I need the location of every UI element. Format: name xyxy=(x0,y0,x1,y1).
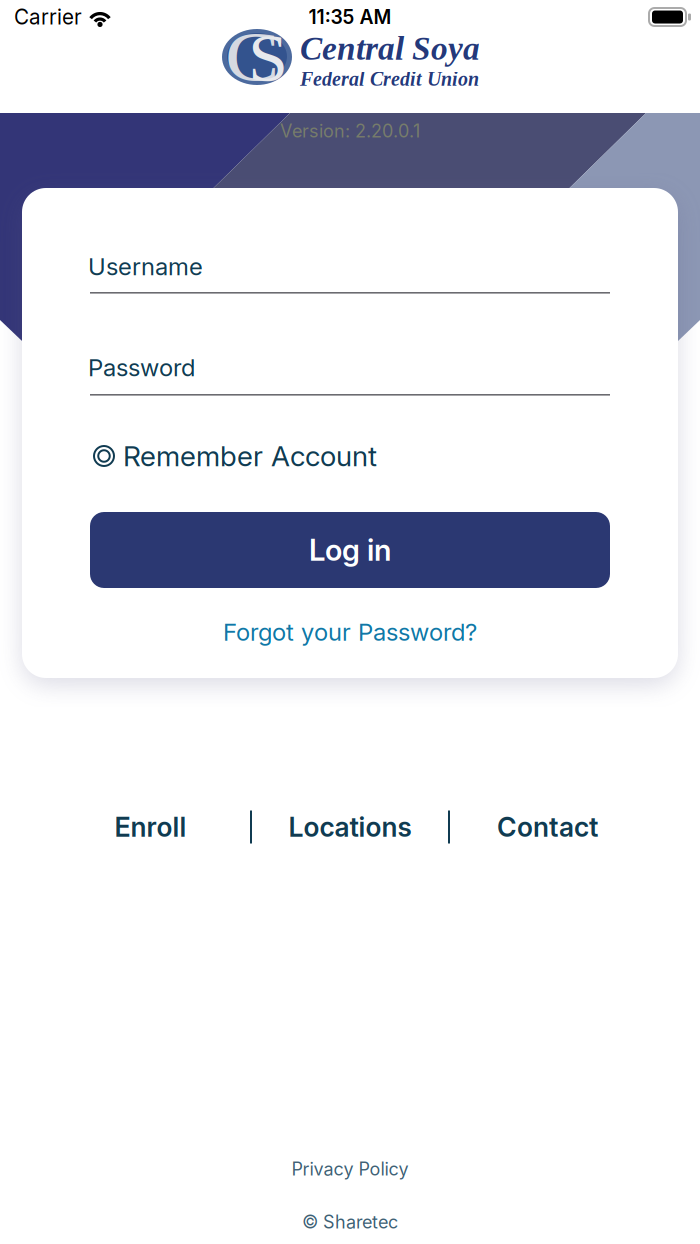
staticText: Forgot your Password? xyxy=(223,617,477,646)
staticText: Username xyxy=(88,252,203,281)
staticText: Privacy Policy xyxy=(291,1158,408,1180)
staticText: Federal Credit Union xyxy=(300,68,479,90)
staticText: Log in xyxy=(309,532,391,568)
staticText: Enroll xyxy=(114,811,186,843)
button[interactable]: Remember Account xyxy=(93,439,613,473)
staticText: Version: 2.20.0.1 xyxy=(280,120,420,142)
staticText: Locations xyxy=(288,811,411,843)
staticText: Contact xyxy=(497,811,598,843)
button[interactable]: Forgot your Password? xyxy=(90,614,610,650)
button[interactable]: Locations xyxy=(252,805,448,849)
staticText: Carrier xyxy=(14,4,82,29)
staticText: Password xyxy=(88,353,195,382)
button[interactable]: Contact xyxy=(450,805,645,849)
staticText: Remember Account xyxy=(123,439,377,473)
staticText: © Sharetec xyxy=(302,1211,398,1233)
staticText: Central Soya xyxy=(300,30,480,67)
staticText: C xyxy=(225,13,278,101)
button[interactable]: Enroll xyxy=(51,805,250,849)
button[interactable]: Privacy Policy xyxy=(0,1156,700,1182)
staticText: 11:35 AM xyxy=(308,5,391,29)
button[interactable]: Log in xyxy=(90,512,610,588)
staticText: S xyxy=(248,18,288,98)
